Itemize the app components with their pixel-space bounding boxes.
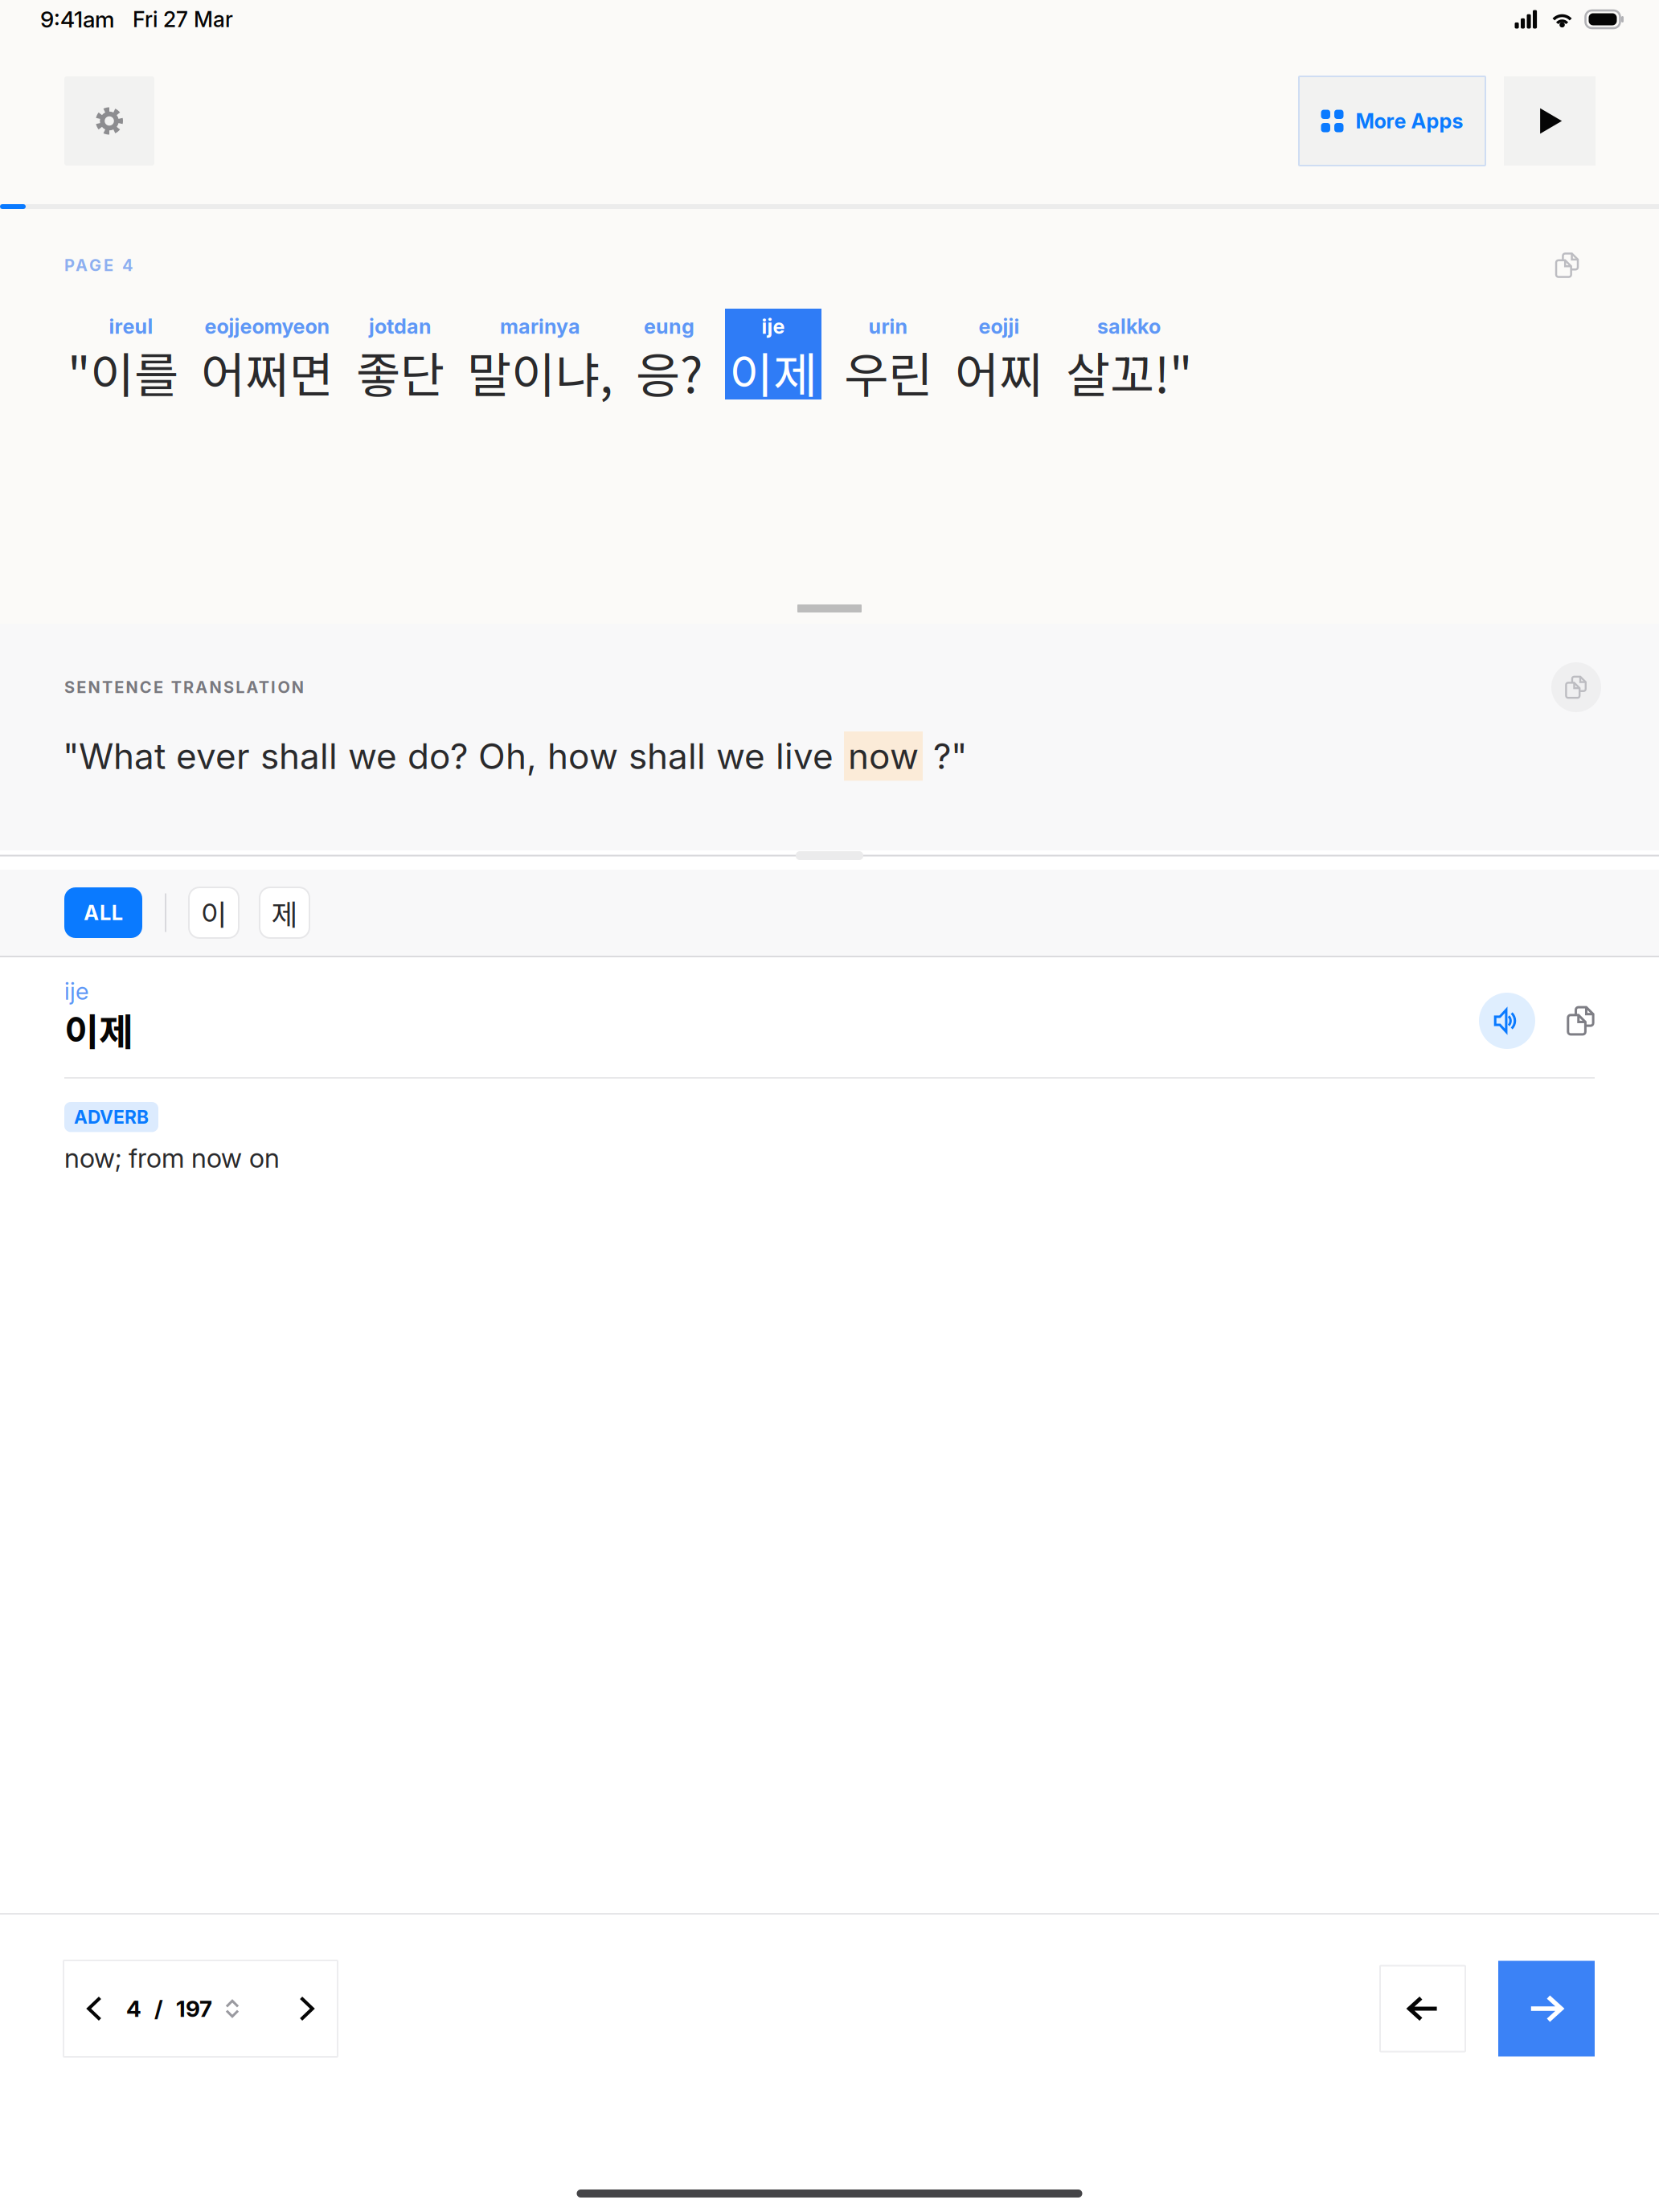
staticText: "이를 [68, 337, 178, 407]
button[interactable]: Previous page [63, 1960, 126, 2057]
staticText: eung [644, 314, 694, 339]
staticText: 말이냐, [467, 337, 613, 407]
staticText: we [348, 735, 397, 777]
staticText: 어쩌면 [201, 337, 334, 407]
button[interactable]: 제 [260, 887, 309, 938]
staticText: 이제 [64, 1002, 133, 1057]
staticText: do? [408, 735, 468, 777]
staticText: / [154, 1995, 163, 2022]
staticText: we [716, 735, 765, 777]
staticText: PAGE 4 [64, 256, 133, 275]
button[interactable]: Next [1498, 1961, 1595, 2056]
staticText: 제 [271, 892, 298, 934]
staticText: 살꼬!" [1066, 337, 1192, 407]
staticText: Fri 27 Mar [133, 6, 233, 32]
staticText: 응? [636, 337, 703, 407]
staticText: 이제 [729, 337, 817, 407]
button[interactable]: Copy sentence [1544, 242, 1591, 289]
staticText: live [776, 735, 834, 777]
button[interactable]: Next page [275, 1960, 338, 2057]
staticText: shall [629, 735, 706, 777]
staticText: ALL [84, 900, 123, 925]
staticText: 4 [126, 1995, 141, 2022]
staticText: ireul [109, 314, 153, 339]
button[interactable]: 이 [189, 887, 239, 938]
staticText: ije [64, 977, 88, 1005]
staticText: ever [176, 735, 250, 777]
staticText: 197 [176, 1995, 212, 2022]
staticText: SENTENCE TRANSLATION [64, 678, 304, 697]
staticText: salkko [1097, 314, 1161, 339]
staticText: 9:41am [40, 6, 115, 33]
staticText: urin [868, 314, 908, 339]
staticText: now; from now on [64, 1142, 280, 1174]
button[interactable]: ALL [64, 887, 142, 938]
staticText: marinya [500, 314, 580, 339]
staticText: ?" [933, 735, 967, 777]
staticText: Oh, [478, 735, 537, 777]
staticText: 이 [201, 892, 227, 934]
staticText: More Apps [1356, 109, 1463, 133]
button[interactable]: Copy translation [1551, 662, 1601, 712]
staticText: eojji [979, 314, 1020, 339]
button[interactable]: More Apps [1299, 76, 1485, 166]
staticText: ije [762, 314, 785, 339]
staticText: 우린 [844, 337, 932, 407]
staticText: eojjeomyeon [205, 314, 330, 339]
button[interactable]: Play [1504, 76, 1596, 166]
staticText: 어찌 [955, 337, 1043, 407]
staticText: shall [260, 735, 338, 777]
staticText: "What [63, 735, 166, 777]
button[interactable]: Settings [64, 76, 154, 166]
button[interactable]: Back [1380, 1966, 1465, 2052]
staticText: jotdan [369, 314, 432, 339]
staticText: 좋단 [356, 337, 444, 407]
button[interactable]: Copy word [1553, 993, 1609, 1049]
staticText: now [848, 735, 919, 777]
staticText: how [547, 735, 618, 777]
button[interactable]: Pronounce [1479, 993, 1535, 1049]
staticText: ADVERB [74, 1106, 149, 1128]
